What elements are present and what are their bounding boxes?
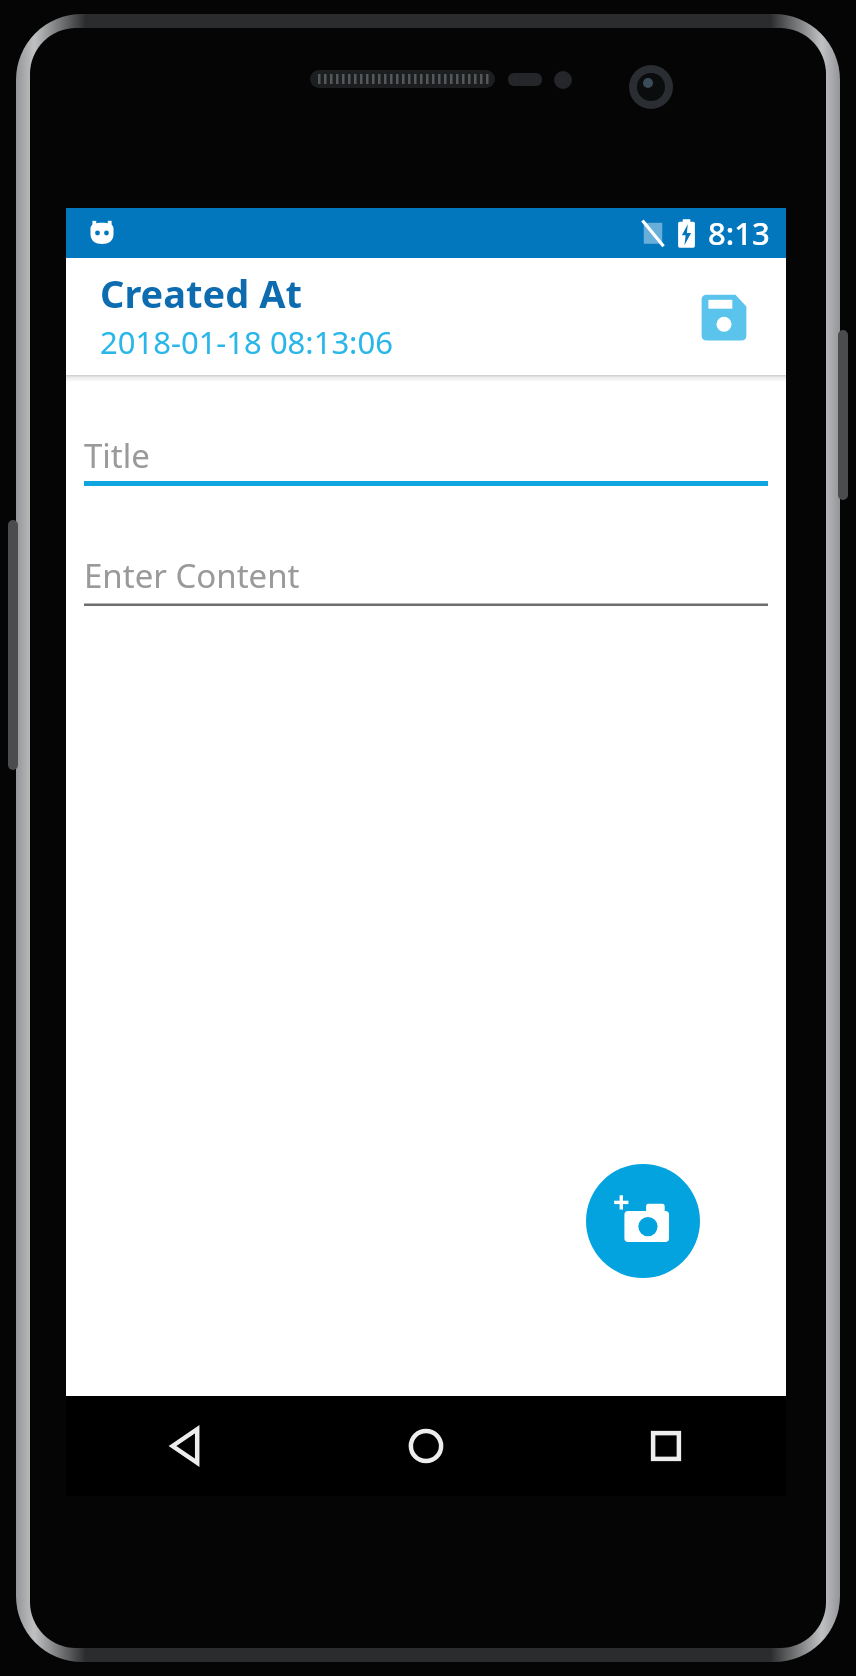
button[interactable]: Title	[84, 410, 768, 486]
staticText: Title	[84, 433, 150, 478]
button[interactable]: Recents	[546, 1396, 786, 1496]
staticText: Created At	[100, 267, 302, 319]
staticText: Enter Content	[84, 553, 300, 598]
button[interactable]: Home	[306, 1396, 546, 1496]
button[interactable]: Enter Content	[84, 530, 768, 606]
button[interactable]: Add photo	[586, 1164, 700, 1278]
button[interactable]: Save	[686, 279, 762, 355]
button[interactable]: Back	[66, 1396, 306, 1496]
staticText: 8:13	[708, 212, 770, 254]
staticText: 2018-01-18 08:13:06	[100, 321, 393, 363]
